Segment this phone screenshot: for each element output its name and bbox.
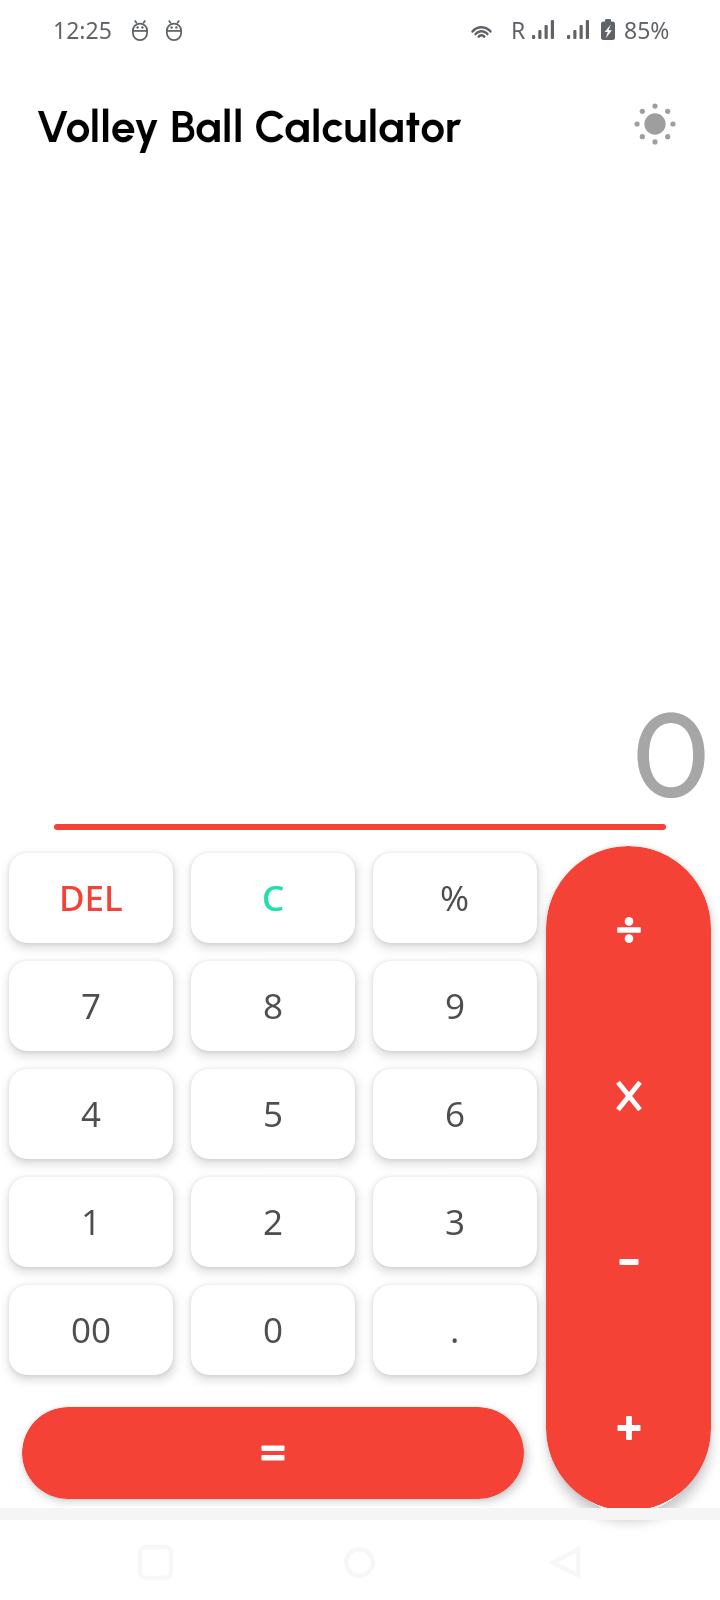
staticText: Volley Ball Calculator [36, 100, 462, 154]
button[interactable]: Subtract [546, 1179, 711, 1345]
button[interactable]: Multiply [546, 1013, 711, 1179]
button[interactable] [22, 1407, 524, 1499]
staticText: DEL [59, 874, 123, 922]
button[interactable]: 6 [373, 1069, 537, 1159]
staticText: 9 [445, 982, 466, 1030]
button[interactable]: Toggle theme [615, 84, 695, 164]
button[interactable]: Divide [546, 846, 711, 1013]
staticText: 0 [263, 1306, 284, 1354]
staticText: 85% [624, 14, 670, 45]
button[interactable]: 5 [191, 1069, 355, 1159]
staticText: 8 [263, 982, 284, 1030]
staticText: . [450, 1306, 460, 1354]
staticText: 7 [81, 982, 102, 1030]
staticText: 12:25 [53, 14, 112, 45]
staticText: 3 [445, 1198, 466, 1246]
button[interactable]: . [373, 1285, 537, 1375]
button[interactable]: 7 [9, 961, 173, 1051]
button[interactable]: 0 [191, 1285, 355, 1375]
staticText: 00 [71, 1306, 112, 1354]
button[interactable]: 4 [9, 1069, 173, 1159]
staticText: C [262, 874, 285, 922]
staticText: 6 [445, 1090, 466, 1138]
staticText: 5 [263, 1090, 284, 1138]
staticText: 2 [263, 1198, 284, 1246]
button[interactable]: 2 [191, 1177, 355, 1267]
button[interactable]: 3 [373, 1177, 537, 1267]
staticText: R [511, 14, 526, 45]
button[interactable]: % [373, 853, 537, 943]
button[interactable]: 9 [373, 961, 537, 1051]
staticText: 0 [0, 678, 710, 828]
staticText: % [440, 874, 470, 922]
button[interactable]: C [191, 853, 355, 943]
button[interactable]: 8 [191, 961, 355, 1051]
button[interactable]: DEL [9, 853, 173, 943]
button[interactable]: Add [546, 1345, 711, 1511]
staticText: 4 [81, 1090, 102, 1138]
button[interactable]: 1 [9, 1177, 173, 1267]
staticText: 1 [81, 1198, 102, 1246]
button[interactable]: 00 [9, 1285, 173, 1375]
